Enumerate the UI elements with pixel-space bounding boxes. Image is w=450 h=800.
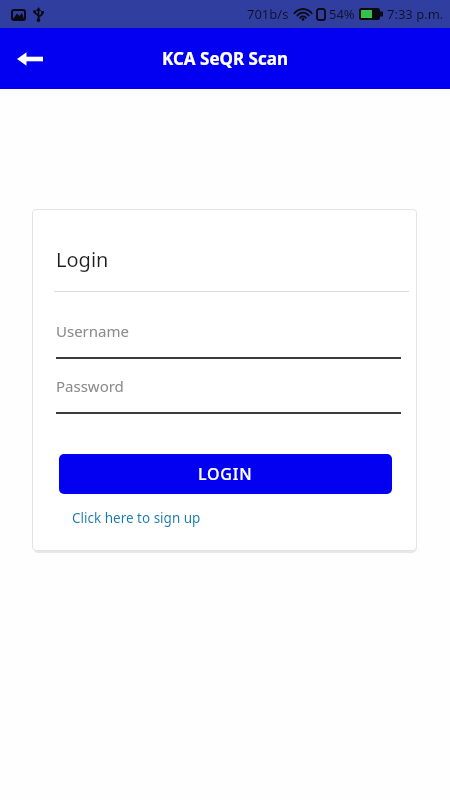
staticText: Click here to sign up bbox=[72, 509, 201, 527]
staticText: 7:33 p.m. bbox=[387, 5, 444, 23]
staticText: 54% bbox=[329, 5, 355, 23]
staticText: KCA SeQR Scan bbox=[162, 47, 288, 70]
staticText: Login bbox=[56, 246, 109, 273]
staticText: Username bbox=[56, 321, 129, 341]
staticText: Password bbox=[56, 376, 124, 396]
staticText: 701b/s bbox=[247, 5, 289, 23]
button[interactable] bbox=[10, 39, 50, 79]
staticText: LOGIN bbox=[198, 463, 253, 485]
button[interactable]: Click here to sign up bbox=[72, 509, 201, 527]
button[interactable]: LOGIN bbox=[59, 454, 392, 494]
